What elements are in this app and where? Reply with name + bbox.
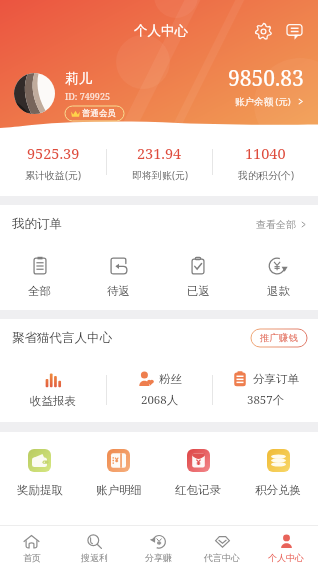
button[interactable]: 推广赚钱: [251, 329, 307, 347]
staticText: 莉儿: [65, 70, 92, 87]
button[interactable]: 奖励提取: [0, 449, 79, 497]
staticText: 3857个: [247, 392, 285, 408]
button[interactable]: 查看全部: [256, 218, 307, 231]
button[interactable]: 退款: [238, 243, 318, 310]
staticText: 查看全部: [256, 218, 296, 231]
staticText: 红包记录: [175, 483, 221, 497]
staticText: 普通会员: [82, 108, 116, 119]
button[interactable]: 首页: [0, 526, 63, 566]
staticText: 首页: [23, 552, 41, 563]
button[interactable]: 9525.39: [0, 143, 106, 182]
staticText: 2068人: [141, 392, 179, 408]
button[interactable]: 积分兑换: [238, 449, 318, 497]
staticText: 搜返利: [81, 552, 108, 563]
button[interactable]: 分享赚: [126, 526, 190, 566]
button[interactable]: 普通会员: [65, 106, 124, 121]
staticText: 聚省猫代言人中心: [12, 330, 112, 346]
button[interactable]: 231.94: [107, 143, 212, 182]
staticText: 积分兑换: [255, 483, 301, 497]
staticText: 退款: [267, 284, 290, 298]
staticText: 个人中心: [268, 552, 304, 563]
staticText: 分享订单: [253, 372, 299, 386]
button[interactable]: Avatar: [14, 73, 55, 114]
button[interactable]: Settings: [255, 23, 272, 40]
button[interactable]: Messages: [286, 23, 303, 40]
button[interactable]: 搜返利: [63, 526, 126, 566]
staticText: 账户余额 (元): [235, 95, 291, 108]
staticText: 收益报表: [30, 394, 76, 408]
button[interactable]: 账户明细: [79, 449, 158, 497]
staticText: 我的订单: [12, 216, 62, 232]
button[interactable]: 收益报表: [0, 372, 106, 408]
staticText: 已返: [187, 284, 210, 298]
staticText: 推广赚钱: [260, 332, 298, 344]
staticText: 账户明细: [96, 483, 142, 497]
staticText: 全部: [28, 284, 51, 298]
staticText: 11040: [245, 143, 286, 163]
staticText: 分享赚: [145, 552, 172, 563]
staticText: 9850.83: [228, 64, 304, 93]
staticText: 奖励提取: [17, 483, 63, 497]
staticText: 我的积分(个): [238, 168, 294, 182]
staticText: 累计收益(元): [25, 168, 81, 182]
button[interactable]: 待返: [79, 243, 158, 310]
staticText: 231.94: [137, 143, 182, 163]
button[interactable]: 已返: [158, 243, 238, 310]
button[interactable]: 分享订单: [213, 371, 318, 408]
button[interactable]: 粉丝: [107, 371, 212, 408]
button[interactable]: 全部: [0, 243, 79, 310]
staticText: 9525.39: [27, 143, 80, 163]
button[interactable]: 红包记录: [158, 449, 238, 497]
staticText: ID: 749925: [65, 90, 110, 102]
staticText: 即将到账(元): [132, 168, 188, 182]
staticText: 粉丝: [159, 372, 182, 386]
staticText: 代言中心: [204, 552, 240, 563]
button[interactable]: 代言中心: [190, 526, 254, 566]
button[interactable]: 个人中心: [254, 526, 318, 566]
button[interactable]: 11040: [213, 143, 318, 182]
button[interactable]: 账户余额 (元): [235, 95, 304, 108]
staticText: 待返: [107, 284, 130, 298]
staticText: 个人中心: [134, 22, 188, 39]
